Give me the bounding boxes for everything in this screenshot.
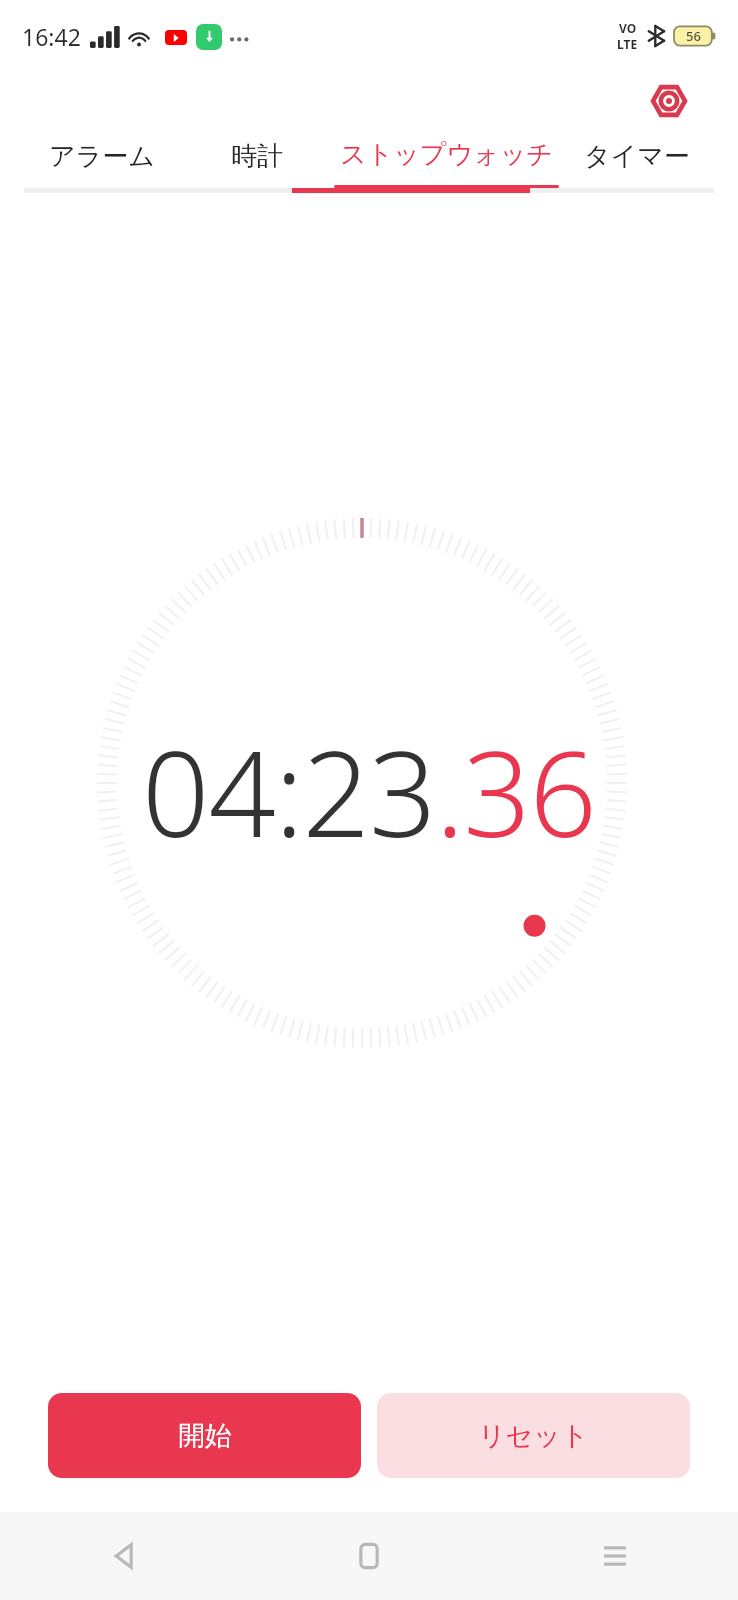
button[interactable]: 開始	[48, 1393, 361, 1478]
button[interactable]: ストップウォッチ	[334, 130, 559, 188]
button[interactable]: タイマー	[559, 130, 714, 188]
staticText: アラーム	[49, 140, 155, 173]
staticText: 04:23.36	[142, 711, 596, 872]
staticText: 開始	[178, 1419, 232, 1453]
staticText: 56	[686, 27, 701, 45]
staticText: ストップウォッチ	[340, 138, 553, 171]
button[interactable]: World clock target	[646, 78, 692, 124]
button[interactable]: リセット	[377, 1393, 690, 1478]
button[interactable]: Back	[0, 1512, 246, 1600]
button[interactable]: Home	[246, 1512, 492, 1600]
staticText: VO	[619, 20, 637, 36]
staticText: リセット	[478, 1419, 589, 1453]
staticText: LTE	[617, 36, 638, 52]
staticText: 時計	[231, 140, 283, 173]
staticText: タイマー	[584, 140, 690, 173]
staticText: 16:42	[22, 21, 81, 52]
button[interactable]: 時計	[179, 130, 334, 188]
button[interactable]: Recent apps	[492, 1512, 738, 1600]
button[interactable]: アラーム	[24, 130, 179, 188]
